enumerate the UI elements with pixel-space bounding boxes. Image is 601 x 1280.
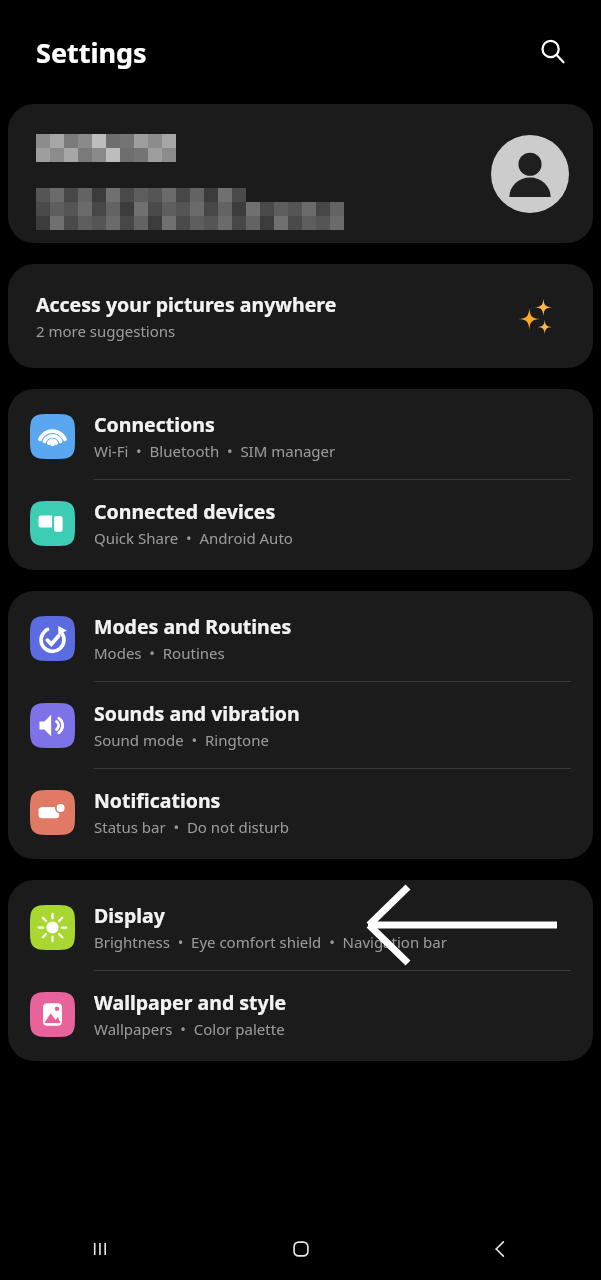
button[interactable]: Search: [531, 30, 575, 74]
button[interactable]: Modes and Routines: [8, 591, 593, 681]
button[interactable]: Samsung account: [8, 104, 593, 243]
button[interactable]: Display: [8, 880, 593, 970]
staticText: Access your pictures anywhere: [36, 291, 337, 318]
staticText: Sounds and vibration: [94, 700, 300, 727]
staticText: Wallpapers • Color palette: [94, 1019, 285, 1039]
button[interactable]: Connected devices: [8, 480, 593, 570]
staticText: Connections: [94, 411, 215, 438]
staticText: Connected devices: [94, 498, 276, 525]
button[interactable]: Notifications: [8, 769, 593, 859]
button[interactable]: Access your pictures anywhere: [8, 264, 593, 368]
staticText: Settings: [36, 34, 147, 71]
staticText: Notifications: [94, 787, 221, 814]
staticText: 2 more suggestions: [36, 321, 176, 341]
button[interactable]: Connections: [8, 389, 593, 479]
staticText: Wi-Fi • Bluetooth • SIM manager: [94, 441, 336, 461]
staticText: Modes and Routines: [94, 613, 292, 640]
button[interactable]: Sounds and vibration: [8, 682, 593, 768]
staticText: Sound mode • Ringtone: [94, 730, 269, 750]
button[interactable]: Back: [401, 1218, 601, 1280]
button[interactable]: Home: [201, 1218, 401, 1280]
staticText: Display: [94, 902, 165, 929]
staticText: Brightness • Eye comfort shield • Naviga…: [94, 932, 447, 952]
staticText: Wallpaper and style: [94, 989, 287, 1016]
button[interactable]: Recents: [0, 1218, 201, 1280]
staticText: Status bar • Do not disturb: [94, 817, 289, 837]
staticText: Quick Share • Android Auto: [94, 528, 293, 548]
staticText: Modes • Routines: [94, 643, 225, 663]
button[interactable]: Wallpaper and style: [8, 971, 593, 1061]
